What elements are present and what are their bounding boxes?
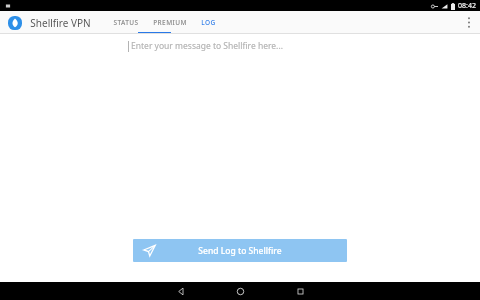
button[interactable]: PREMIUM — [153, 11, 187, 34]
staticText: 08:42 — [458, 1, 476, 11]
staticText: Shellfire VPN — [30, 16, 91, 30]
button[interactable]: Home — [210, 282, 270, 300]
staticText: Enter your message to Shellfire here... — [131, 40, 283, 52]
button[interactable]: Back — [150, 282, 210, 300]
staticText: STATUS — [113, 18, 139, 27]
button[interactable]: Recent apps — [270, 282, 330, 300]
button[interactable]: Send Log to Shellfire — [133, 239, 347, 262]
staticText: PREMIUM — [153, 18, 187, 27]
button[interactable]: Enter your message to Shellfire here... — [128, 40, 480, 52]
button[interactable]: STATUS — [113, 11, 139, 34]
staticText: Send Log to Shellfire — [198, 245, 282, 257]
button[interactable]: LOG — [201, 11, 216, 34]
staticText: LOG — [201, 18, 216, 27]
button[interactable]: More options — [458, 11, 480, 34]
